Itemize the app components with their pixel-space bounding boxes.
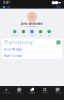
- button[interactable]: mail: [37, 29, 44, 37]
- button[interactable]: Contacts: [26, 87, 38, 94]
- button[interactable]: Edit: [56, 5, 61, 9]
- staticText: mobile: [4, 40, 8, 42]
- button[interactable]: mobile: [2, 39, 62, 46]
- staticText: Jane Anderson: [21, 22, 43, 25]
- staticText: +1 (415) 555-0134: [4, 42, 33, 45]
- staticText: video: [30, 35, 34, 37]
- staticText: Northwind Design: [26, 25, 38, 27]
- button[interactable]: video: [28, 29, 36, 37]
- button[interactable]: call: [20, 29, 27, 37]
- staticText: message: [11, 35, 18, 37]
- staticText: Send Message: [4, 48, 23, 51]
- button[interactable]: Keypad: [38, 87, 51, 94]
- staticText: 9:41: [3, 1, 10, 4]
- staticText: Share Contact: [4, 54, 22, 58]
- staticText: Recents: [16, 92, 22, 94]
- staticText: call: [22, 35, 24, 37]
- button[interactable]: Lists: [3, 5, 10, 9]
- button[interactable]: Voicemail: [51, 87, 64, 94]
- staticText: Edit: [56, 5, 61, 9]
- staticText: Voicemail: [55, 92, 61, 94]
- button[interactable]: Share Contact: [2, 53, 62, 59]
- staticText: Lists: [5, 5, 10, 9]
- staticText: Keypad: [42, 92, 48, 94]
- button[interactable]: Send Message: [2, 46, 62, 52]
- staticText: pay: [48, 35, 51, 37]
- button[interactable]: Recents: [13, 87, 26, 94]
- button[interactable]: message: [11, 29, 18, 37]
- staticText: Contacts: [29, 92, 35, 94]
- button[interactable]: pay: [46, 29, 53, 37]
- button[interactable]: Favorites: [0, 87, 13, 94]
- staticText: mail: [40, 35, 42, 37]
- staticText: Favorites: [3, 92, 10, 94]
